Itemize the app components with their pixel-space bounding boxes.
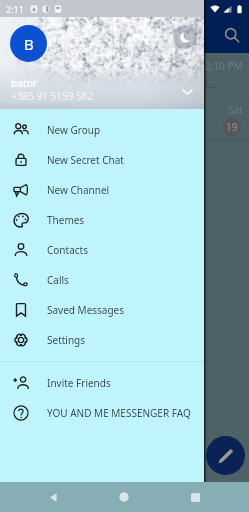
staticText: Settings (47, 333, 86, 347)
button[interactable]: Saved Messages (0, 295, 204, 325)
staticText: New Channel (47, 183, 110, 197)
button[interactable]: Themes (0, 205, 204, 235)
staticText: 2:11 (6, 3, 24, 15)
staticText: YOU AND ME MESSENGER FAQ (47, 406, 191, 420)
staticText: Sat (228, 103, 243, 117)
staticText: New Secret Chat (47, 153, 124, 167)
staticText: +385 91 5159 582 (11, 89, 94, 103)
button[interactable]: New Group (0, 115, 204, 145)
staticText: bator (11, 76, 38, 90)
button[interactable]: YOU AND ME MESSENGER FAQ (0, 398, 204, 428)
button[interactable]: Home (100, 482, 148, 512)
button[interactable]: Expand accounts (176, 80, 198, 102)
button[interactable]: 2:10 PM (0, 53, 249, 97)
staticText: s co… (188, 76, 217, 91)
staticText: Saved Messages (47, 303, 125, 317)
staticText: Themes (47, 213, 85, 227)
button[interactable]: Sat (0, 97, 249, 141)
staticText: 2:10 PM (205, 59, 243, 73)
button[interactable]: Contacts (0, 235, 204, 265)
staticText: B (24, 34, 34, 54)
button[interactable]: Recents (171, 482, 219, 512)
staticText: New Group (47, 123, 101, 137)
button[interactable]: New Channel (0, 175, 204, 205)
button[interactable]: Search (218, 21, 246, 49)
staticText: Calls (47, 273, 69, 287)
button[interactable]: Invite Friends (0, 368, 204, 398)
button[interactable]: Settings (0, 325, 204, 355)
staticText: 19 (226, 120, 238, 134)
button[interactable]: New message (206, 436, 245, 475)
button[interactable]: Calls (0, 265, 204, 295)
button[interactable]: Night mode (173, 25, 197, 49)
staticText: Invite Friends (47, 376, 111, 390)
button[interactable]: New Secret Chat (0, 145, 204, 175)
button[interactable]: B (10, 25, 47, 62)
button[interactable]: Back (29, 482, 77, 512)
staticText: Contacts (47, 243, 88, 257)
